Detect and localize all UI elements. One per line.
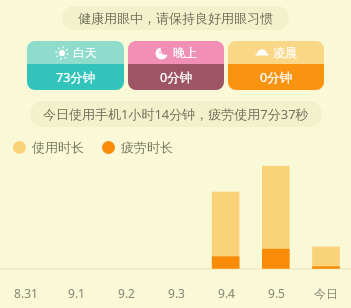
button[interactable]: 白天 — [27, 41, 124, 90]
staticText: 9.4 — [218, 285, 235, 301]
button[interactable]: 9.3 — [151, 285, 201, 308]
staticText: 9.2 — [118, 285, 135, 301]
button[interactable]: 晚上 — [128, 41, 224, 90]
button[interactable]: 9.2 — [101, 285, 151, 308]
staticText: 白天 — [73, 45, 97, 60]
button[interactable]: 9.5 — [251, 285, 301, 308]
staticText: 晚上 — [173, 45, 197, 60]
staticText: 健康用眼中，请保持良好用眼习惯 — [78, 10, 273, 26]
button[interactable]: 8.31 — [0, 285, 51, 308]
staticText: 8.31 — [14, 285, 38, 301]
staticText: 9.5 — [268, 285, 285, 301]
button[interactable]: 使用时长 — [13, 137, 84, 157]
button[interactable]: 疲劳时长 — [102, 137, 173, 157]
button[interactable]: 9.1 — [51, 285, 101, 308]
other: 晚上 — [155, 46, 169, 60]
button[interactable]: 9.4 — [201, 285, 251, 308]
staticText: 9.1 — [68, 285, 85, 301]
button[interactable]: 凌晨 — [228, 41, 324, 90]
staticText: 凌晨 — [273, 45, 297, 60]
staticText: 今日 — [314, 286, 338, 301]
button[interactable]: 今日 — [301, 286, 351, 308]
button[interactable]: 今日使用手机1小时14分钟，疲劳使用7分37秒 — [30, 101, 322, 127]
staticText: 73分钟 — [56, 69, 96, 86]
staticText: 今日使用手机1小时14分钟，疲劳使用7分37秒 — [43, 105, 309, 123]
staticText: 使用时长 — [32, 139, 84, 155]
staticText: 疲劳时长 — [121, 139, 173, 155]
button[interactable]: 健康用眼中，请保持良好用眼习惯 — [62, 6, 289, 30]
staticText: 0分钟 — [160, 69, 193, 86]
staticText: 9.3 — [168, 285, 185, 301]
other: 凌晨 — [255, 46, 269, 60]
staticText: 0分钟 — [260, 69, 293, 86]
other: 白天 — [55, 46, 69, 60]
